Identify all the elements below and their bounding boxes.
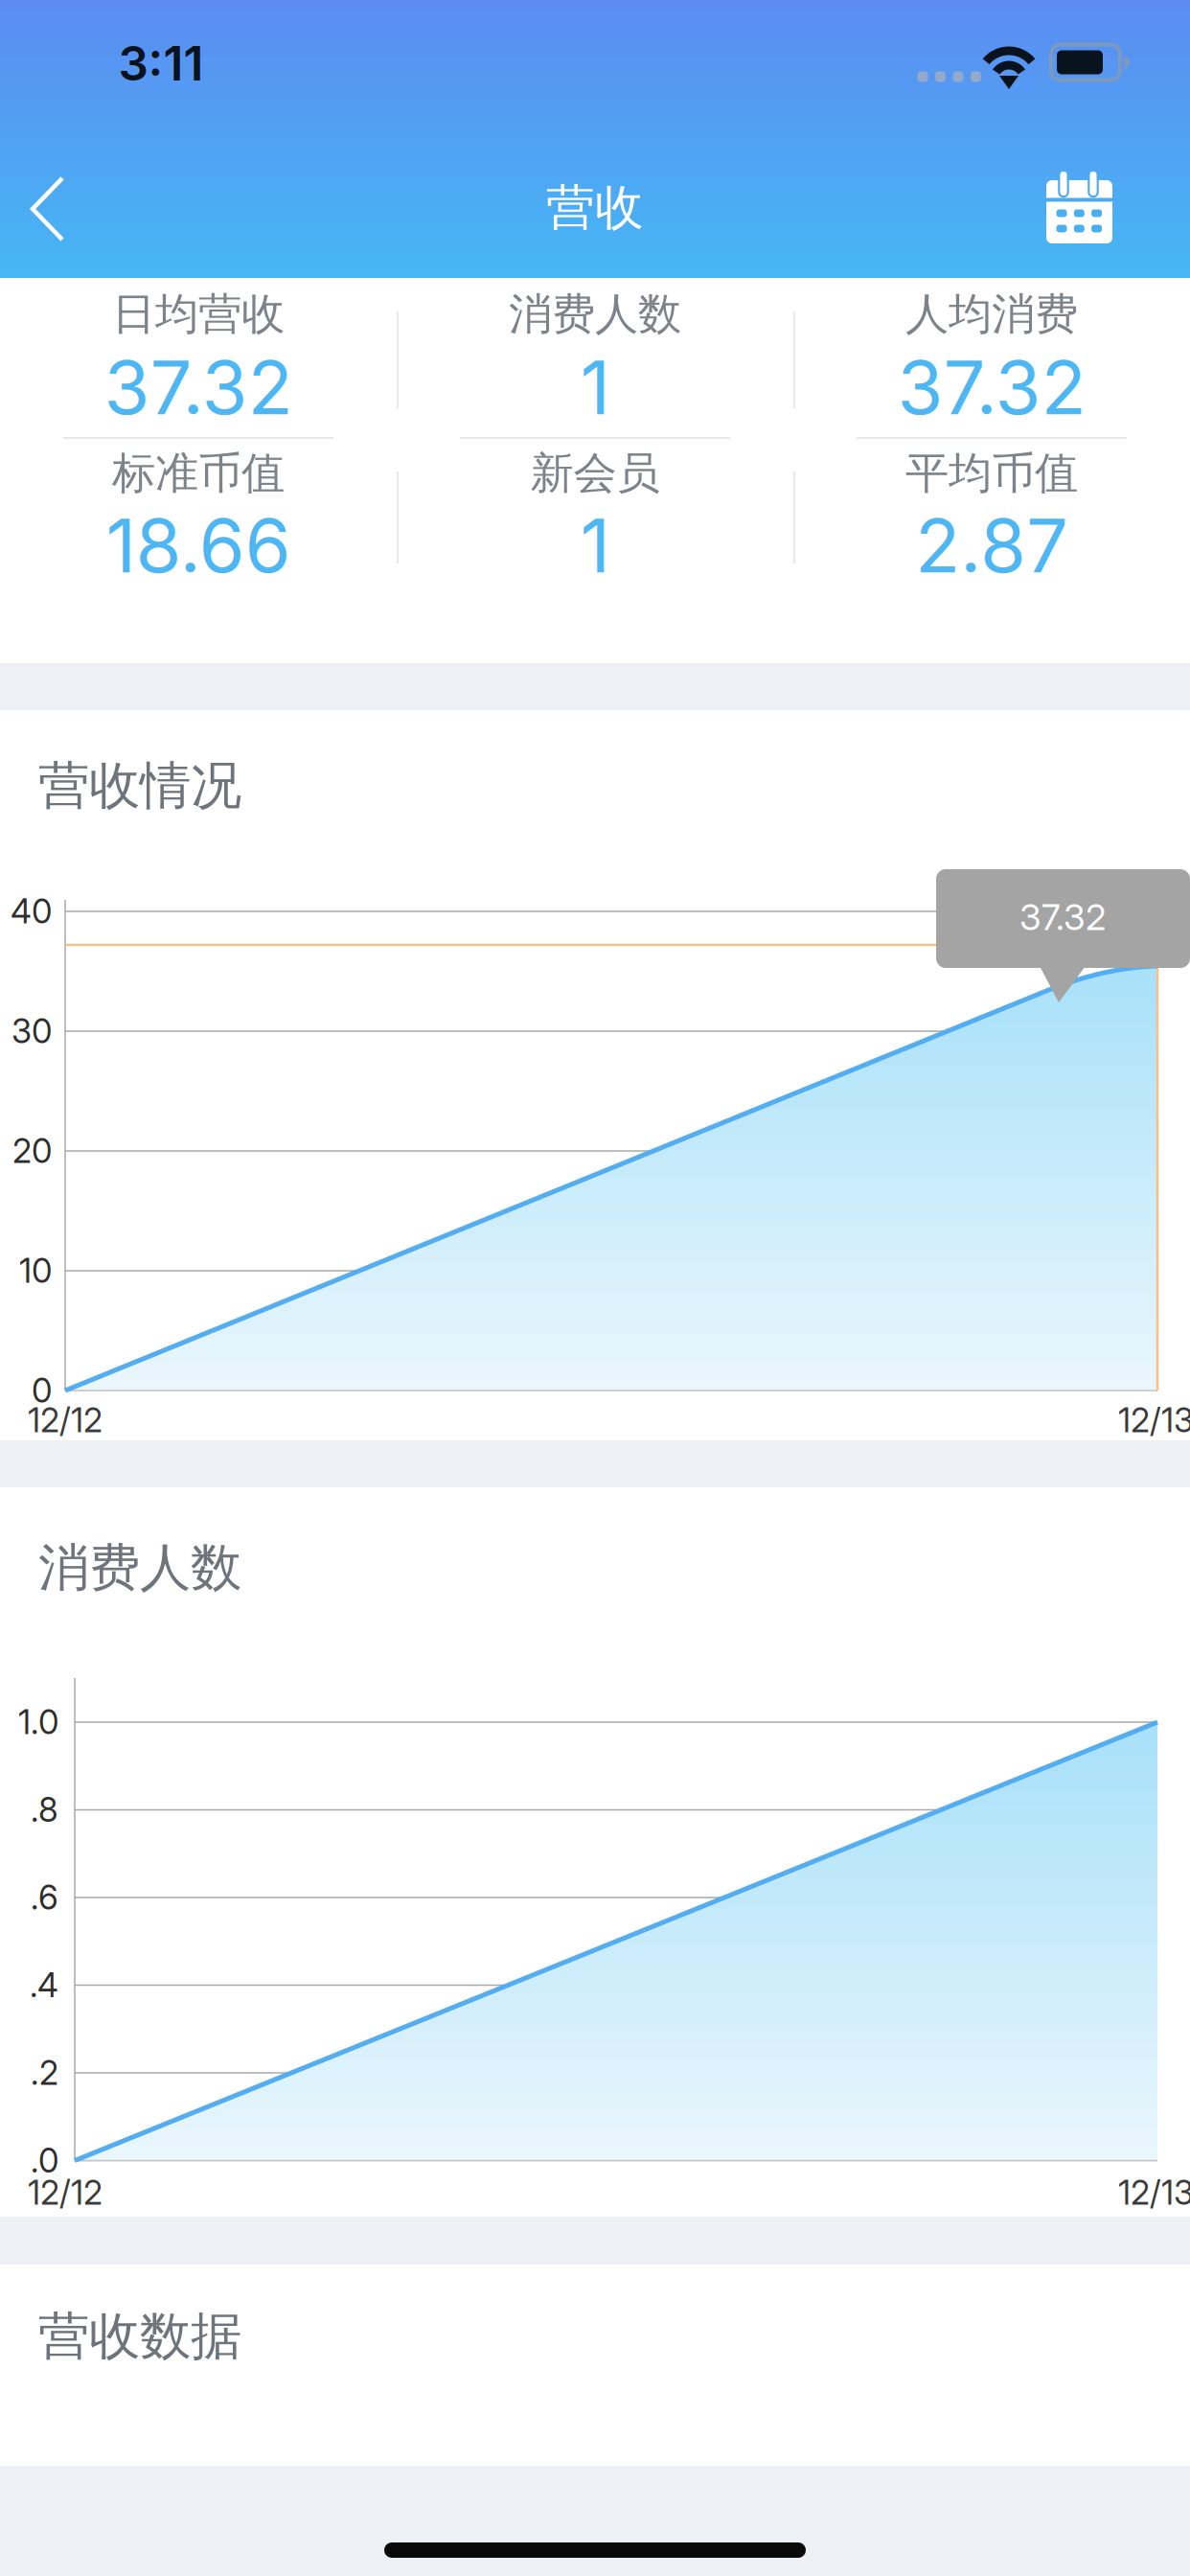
staticText: 12/12	[28, 1400, 103, 1440]
staticText: 3:11	[118, 35, 204, 92]
staticText: 营收数据	[38, 2305, 241, 2368]
staticText: 2.87	[915, 500, 1068, 590]
staticText: 营收情况	[38, 754, 241, 817]
staticText: 消费人数	[509, 288, 681, 341]
button[interactable]: Calendar	[0, 0, 1190, 2576]
staticText: 0	[32, 1370, 52, 1411]
staticText: 40	[11, 891, 52, 931]
staticText: 1.0	[18, 1702, 58, 1742]
button[interactable]: Back	[0, 0, 1190, 2576]
staticText: 标准币值	[112, 447, 285, 500]
staticText: 1	[580, 342, 610, 432]
staticText: 12/13	[1118, 2173, 1190, 2213]
staticText: .8	[31, 1790, 58, 1830]
staticText: .6	[31, 1877, 58, 1918]
staticText: 12/13	[1118, 1400, 1190, 1440]
staticText: 20	[12, 1131, 52, 1171]
staticText: .4	[30, 1965, 58, 2005]
staticText: 12/12	[28, 2173, 103, 2213]
staticText: 37.32	[897, 342, 1086, 432]
staticText: .0	[31, 2140, 58, 2181]
staticText: 37.32	[104, 342, 293, 432]
staticText: 日均营收	[112, 288, 285, 341]
staticText: 营收	[546, 178, 644, 238]
staticText: 平均币值	[905, 447, 1078, 500]
staticText: 18.66	[106, 500, 291, 590]
staticText: 30	[11, 1011, 52, 1051]
staticText: 新会员	[530, 447, 660, 500]
staticText: 1	[580, 500, 610, 590]
staticText: 消费人数	[38, 1536, 241, 1599]
staticText: 人均消费	[905, 288, 1078, 341]
staticText: 10	[19, 1251, 52, 1291]
staticText: .2	[31, 2053, 58, 2093]
staticText: 37.32	[1019, 895, 1106, 939]
